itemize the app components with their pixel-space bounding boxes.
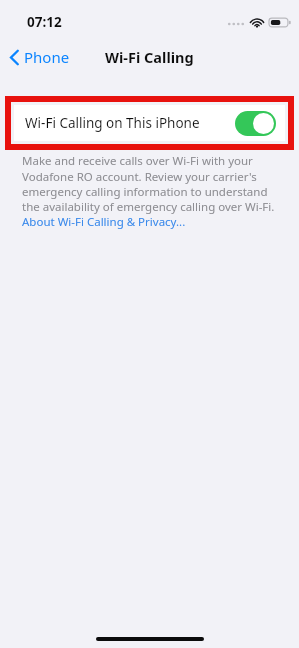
button[interactable]: Make and receive calls over Wi-Fi with y… <box>22 153 281 229</box>
staticText: Wi-Fi Calling on This iPhone <box>25 114 235 132</box>
button[interactable]: Wi-Fi Calling on This iPhone <box>14 105 285 141</box>
button[interactable]: Phone <box>9 47 70 67</box>
staticText: Wi-Fi Calling <box>105 47 194 67</box>
staticText: Phone <box>24 47 70 67</box>
button[interactable]: Wi-Fi Calling toggle, on <box>235 111 276 136</box>
staticText: 07:12 <box>27 13 62 31</box>
